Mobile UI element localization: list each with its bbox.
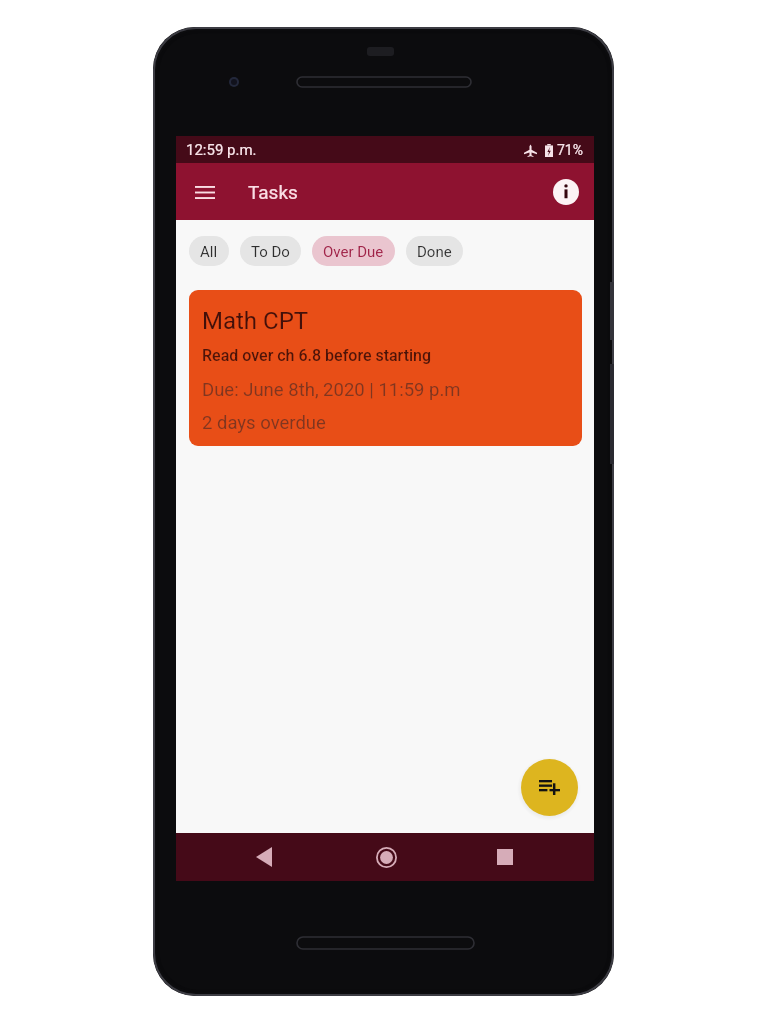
button[interactable]: Recent apps xyxy=(481,833,529,881)
staticText: Math CPT xyxy=(202,307,309,335)
staticText: 2 days overdue xyxy=(202,412,326,434)
staticText: Due: June 8th, 2020 | 11:59 p.m xyxy=(202,379,461,401)
staticText: Done xyxy=(417,243,452,261)
staticText: 12:59 p.m. xyxy=(186,141,257,159)
button[interactable]: Information xyxy=(548,174,584,210)
staticText: Read over ch 6.8 before starting xyxy=(202,346,432,365)
button[interactable]: Open navigation menu xyxy=(185,172,225,212)
button[interactable]: Done xyxy=(406,236,463,266)
button[interactable]: Back xyxy=(240,833,288,881)
staticText: Tasks xyxy=(248,181,298,203)
button[interactable]: Add new task xyxy=(521,759,578,816)
button[interactable]: To Do xyxy=(240,236,301,266)
button[interactable]: Home xyxy=(362,833,410,881)
staticText: All xyxy=(200,243,218,261)
staticText: 71% xyxy=(557,142,583,158)
button[interactable]: Math CPT xyxy=(189,290,582,446)
staticText: Over Due xyxy=(323,243,384,261)
button[interactable]: All xyxy=(189,236,229,266)
button[interactable]: Over Due xyxy=(312,236,395,266)
staticText: To Do xyxy=(251,243,290,261)
